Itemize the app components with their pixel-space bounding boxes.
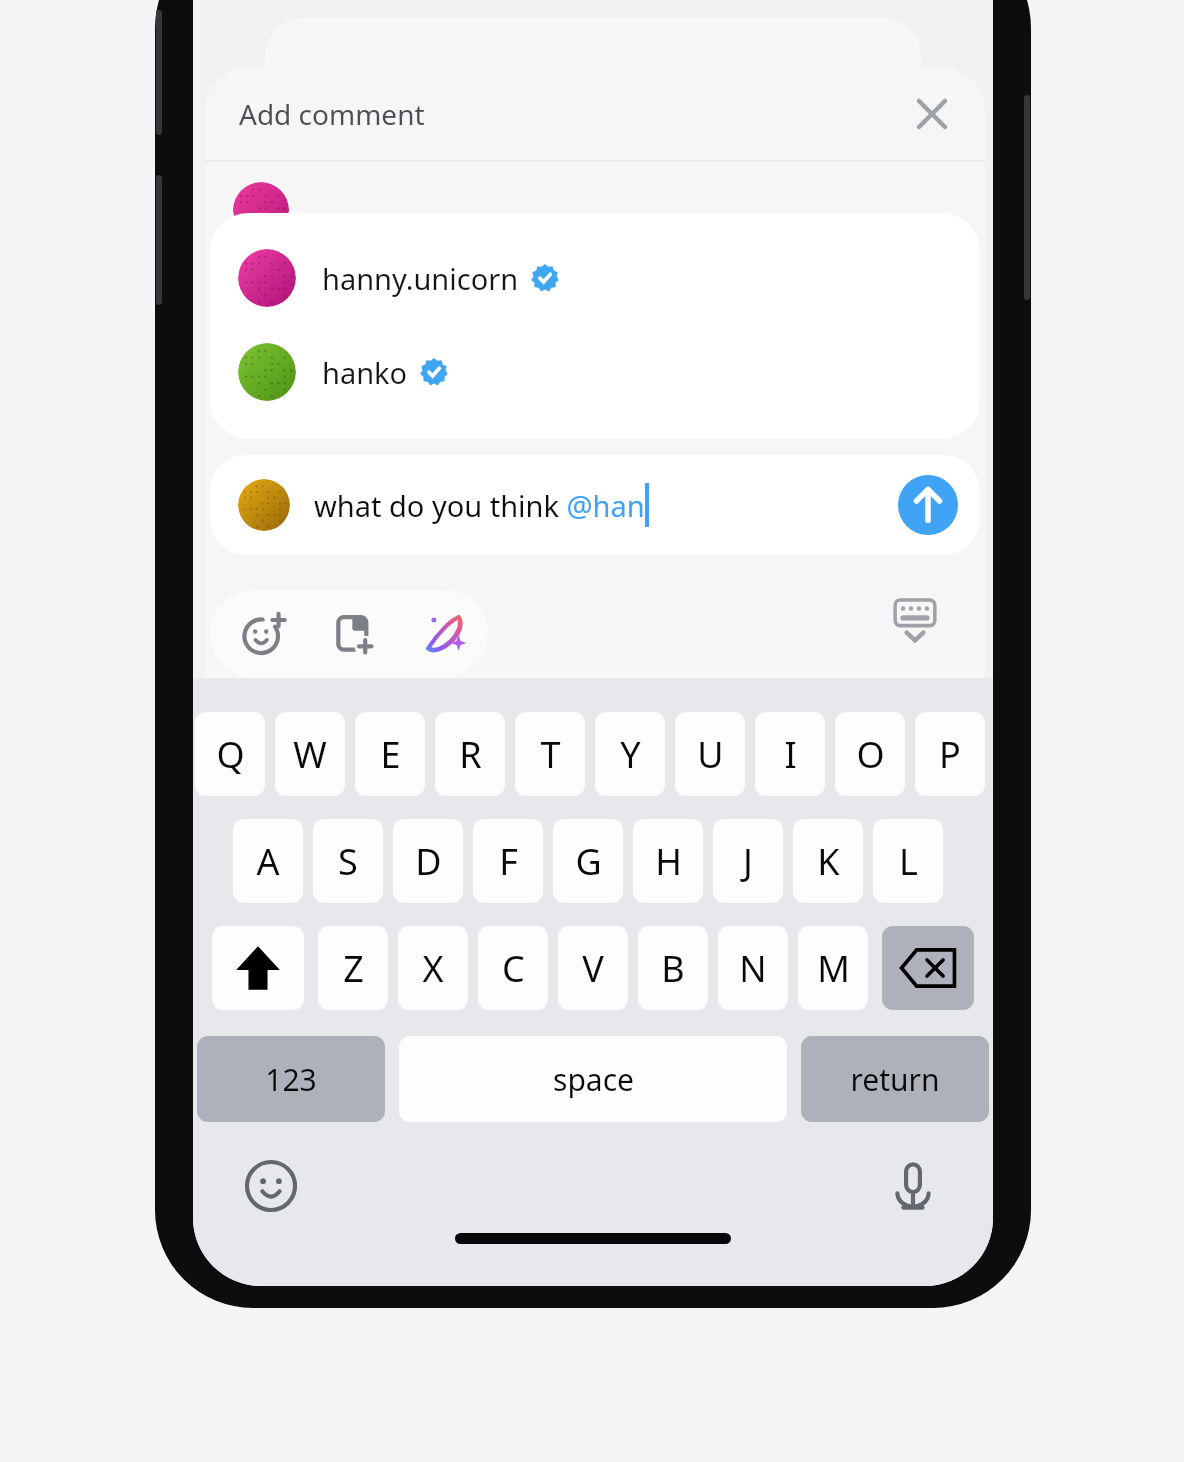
button[interactable]: L <box>873 819 943 903</box>
staticText: V <box>582 944 604 993</box>
button[interactable]: hanko <box>210 325 980 419</box>
button[interactable]: B <box>638 926 708 1010</box>
staticText: 123 <box>265 1059 317 1100</box>
staticText: Z <box>343 944 364 993</box>
button[interactable]: Y <box>595 712 665 796</box>
staticText: T <box>540 730 561 779</box>
button[interactable]: X <box>398 926 468 1010</box>
button[interactable]: I <box>755 712 825 796</box>
staticText: space <box>553 1059 634 1100</box>
staticText: W <box>293 730 327 779</box>
button[interactable]: Shift <box>212 926 304 1010</box>
button[interactable]: AI effects <box>416 606 472 662</box>
button[interactable]: Voice input <box>883 1156 943 1216</box>
staticText: L <box>899 837 918 886</box>
button[interactable]: space <box>399 1036 787 1122</box>
button[interactable]: what do you think @han <box>210 455 980 555</box>
staticText: hanny.unicorn <box>322 259 519 298</box>
staticText: F <box>499 837 518 886</box>
button[interactable]: A <box>233 819 303 903</box>
button[interactable]: hanny.unicorn <box>210 231 980 325</box>
staticText: B <box>661 944 685 993</box>
staticText: G <box>575 837 602 886</box>
button[interactable]: E <box>355 712 425 796</box>
button[interactable]: Emoji <box>241 1156 301 1216</box>
button[interactable]: C <box>478 926 548 1010</box>
button[interactable]: F <box>473 819 543 903</box>
button[interactable]: 123 <box>197 1036 385 1122</box>
staticText: what do you think @han <box>314 486 645 525</box>
staticText: H <box>655 837 682 886</box>
button[interactable]: S <box>313 819 383 903</box>
button[interactable]: J <box>713 819 783 903</box>
button[interactable]: U <box>675 712 745 796</box>
staticText: U <box>697 730 724 779</box>
button[interactable]: H <box>633 819 703 903</box>
button[interactable]: P <box>915 712 985 796</box>
staticText: D <box>415 837 442 886</box>
staticText: I <box>784 730 797 779</box>
button[interactable]: Add sticker <box>236 606 292 662</box>
button[interactable]: D <box>393 819 463 903</box>
staticText: P <box>939 730 961 779</box>
button[interactable]: Hide keyboard <box>883 588 947 652</box>
staticText: S <box>338 837 358 886</box>
staticText: Q <box>216 730 245 779</box>
button[interactable]: T <box>515 712 585 796</box>
button[interactable]: R <box>435 712 505 796</box>
button[interactable]: M <box>798 926 868 1010</box>
staticText: N <box>739 944 767 993</box>
button[interactable]: Send <box>898 475 958 535</box>
button[interactable]: O <box>835 712 905 796</box>
staticText: X <box>422 944 444 993</box>
button[interactable]: Z <box>318 926 388 1010</box>
button[interactable]: N <box>718 926 788 1010</box>
button[interactable]: Close <box>907 89 957 139</box>
staticText: A <box>256 837 280 886</box>
staticText: Y <box>620 730 641 779</box>
button[interactable]: return <box>801 1036 989 1122</box>
button[interactable]: W <box>275 712 345 796</box>
staticText: hanko <box>322 353 408 392</box>
staticText: Add comment <box>239 95 425 133</box>
button[interactable]: Q <box>195 712 265 796</box>
staticText: K <box>817 837 840 886</box>
staticText: C <box>502 944 525 993</box>
button[interactable]: K <box>793 819 863 903</box>
button[interactable]: G <box>553 819 623 903</box>
staticText: E <box>380 730 401 779</box>
staticText: O <box>856 730 885 779</box>
button[interactable]: V <box>558 926 628 1010</box>
button[interactable]: Add GIF <box>326 606 382 662</box>
button[interactable]: Backspace <box>882 926 974 1010</box>
staticText: M <box>817 944 850 993</box>
staticText: return <box>850 1059 940 1100</box>
staticText: J <box>743 837 753 886</box>
staticText: R <box>459 730 482 779</box>
